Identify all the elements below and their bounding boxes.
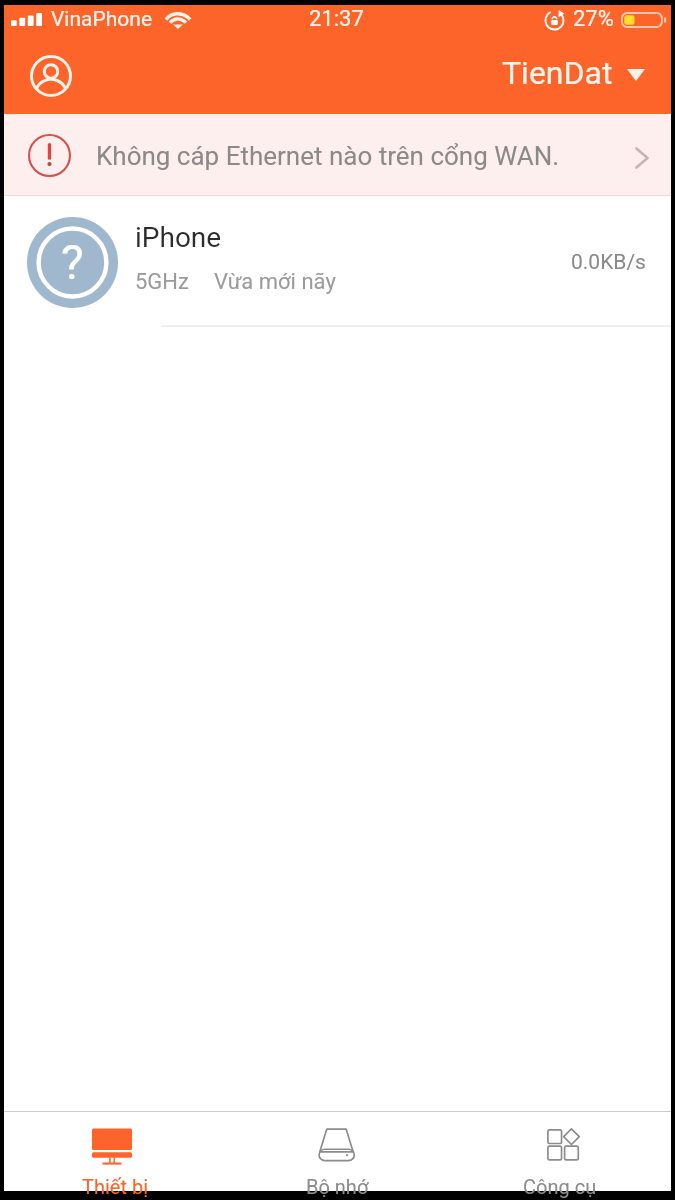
button[interactable]: TienDat (502, 54, 645, 92)
button[interactable]: Thiết bị (4, 1111, 226, 1191)
staticText: Thiết bị (82, 1175, 149, 1198)
staticText: ? (61, 234, 84, 290)
button[interactable]: Công cụ (449, 1111, 671, 1191)
staticText: iPhone (135, 221, 222, 254)
staticText: TienDat (502, 54, 613, 92)
staticText: Công cụ (523, 1175, 597, 1198)
staticText: 0.0KB/s (571, 250, 646, 275)
staticText: VinaPhone (51, 7, 153, 32)
staticText: 21:37 (309, 6, 364, 32)
staticText: Bộ nhớ (306, 1175, 369, 1198)
button[interactable]: Account (24, 49, 78, 103)
staticText: 27% (573, 6, 614, 32)
button[interactable]: ? (4, 196, 671, 327)
staticText: Vừa mới nãy (214, 269, 336, 295)
button[interactable]: Không cáp Ethernet nào trên cổng WAN. (4, 114, 671, 196)
button[interactable]: Bộ nhớ (226, 1111, 449, 1191)
staticText: Không cáp Ethernet nào trên cổng WAN. (96, 141, 560, 171)
staticText: 5GHz (135, 269, 189, 295)
